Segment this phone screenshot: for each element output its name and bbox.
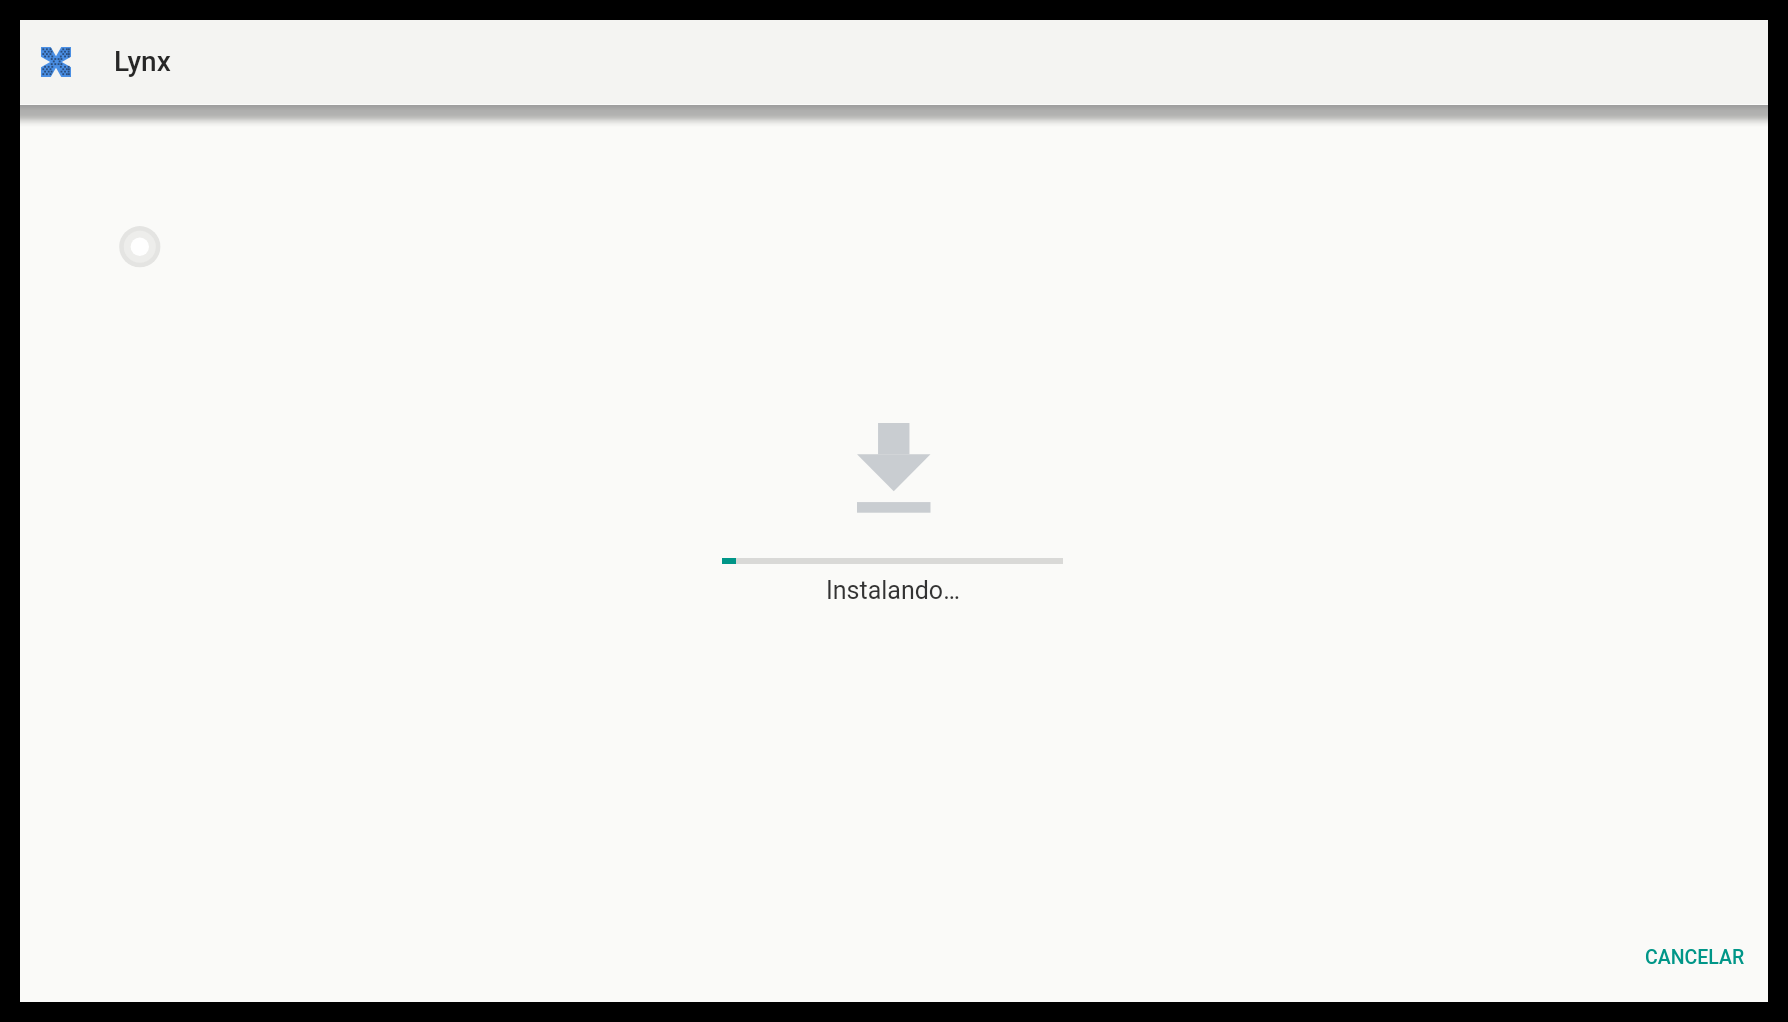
other: Downloading [857,423,931,513]
button[interactable]: CANCELAR [1630,933,1760,981]
other: Lynx app icon [41,47,71,77]
staticText: Lynx [114,45,171,78]
staticText: CANCELAR [1645,946,1745,969]
staticText: Instalando… [826,576,960,605]
